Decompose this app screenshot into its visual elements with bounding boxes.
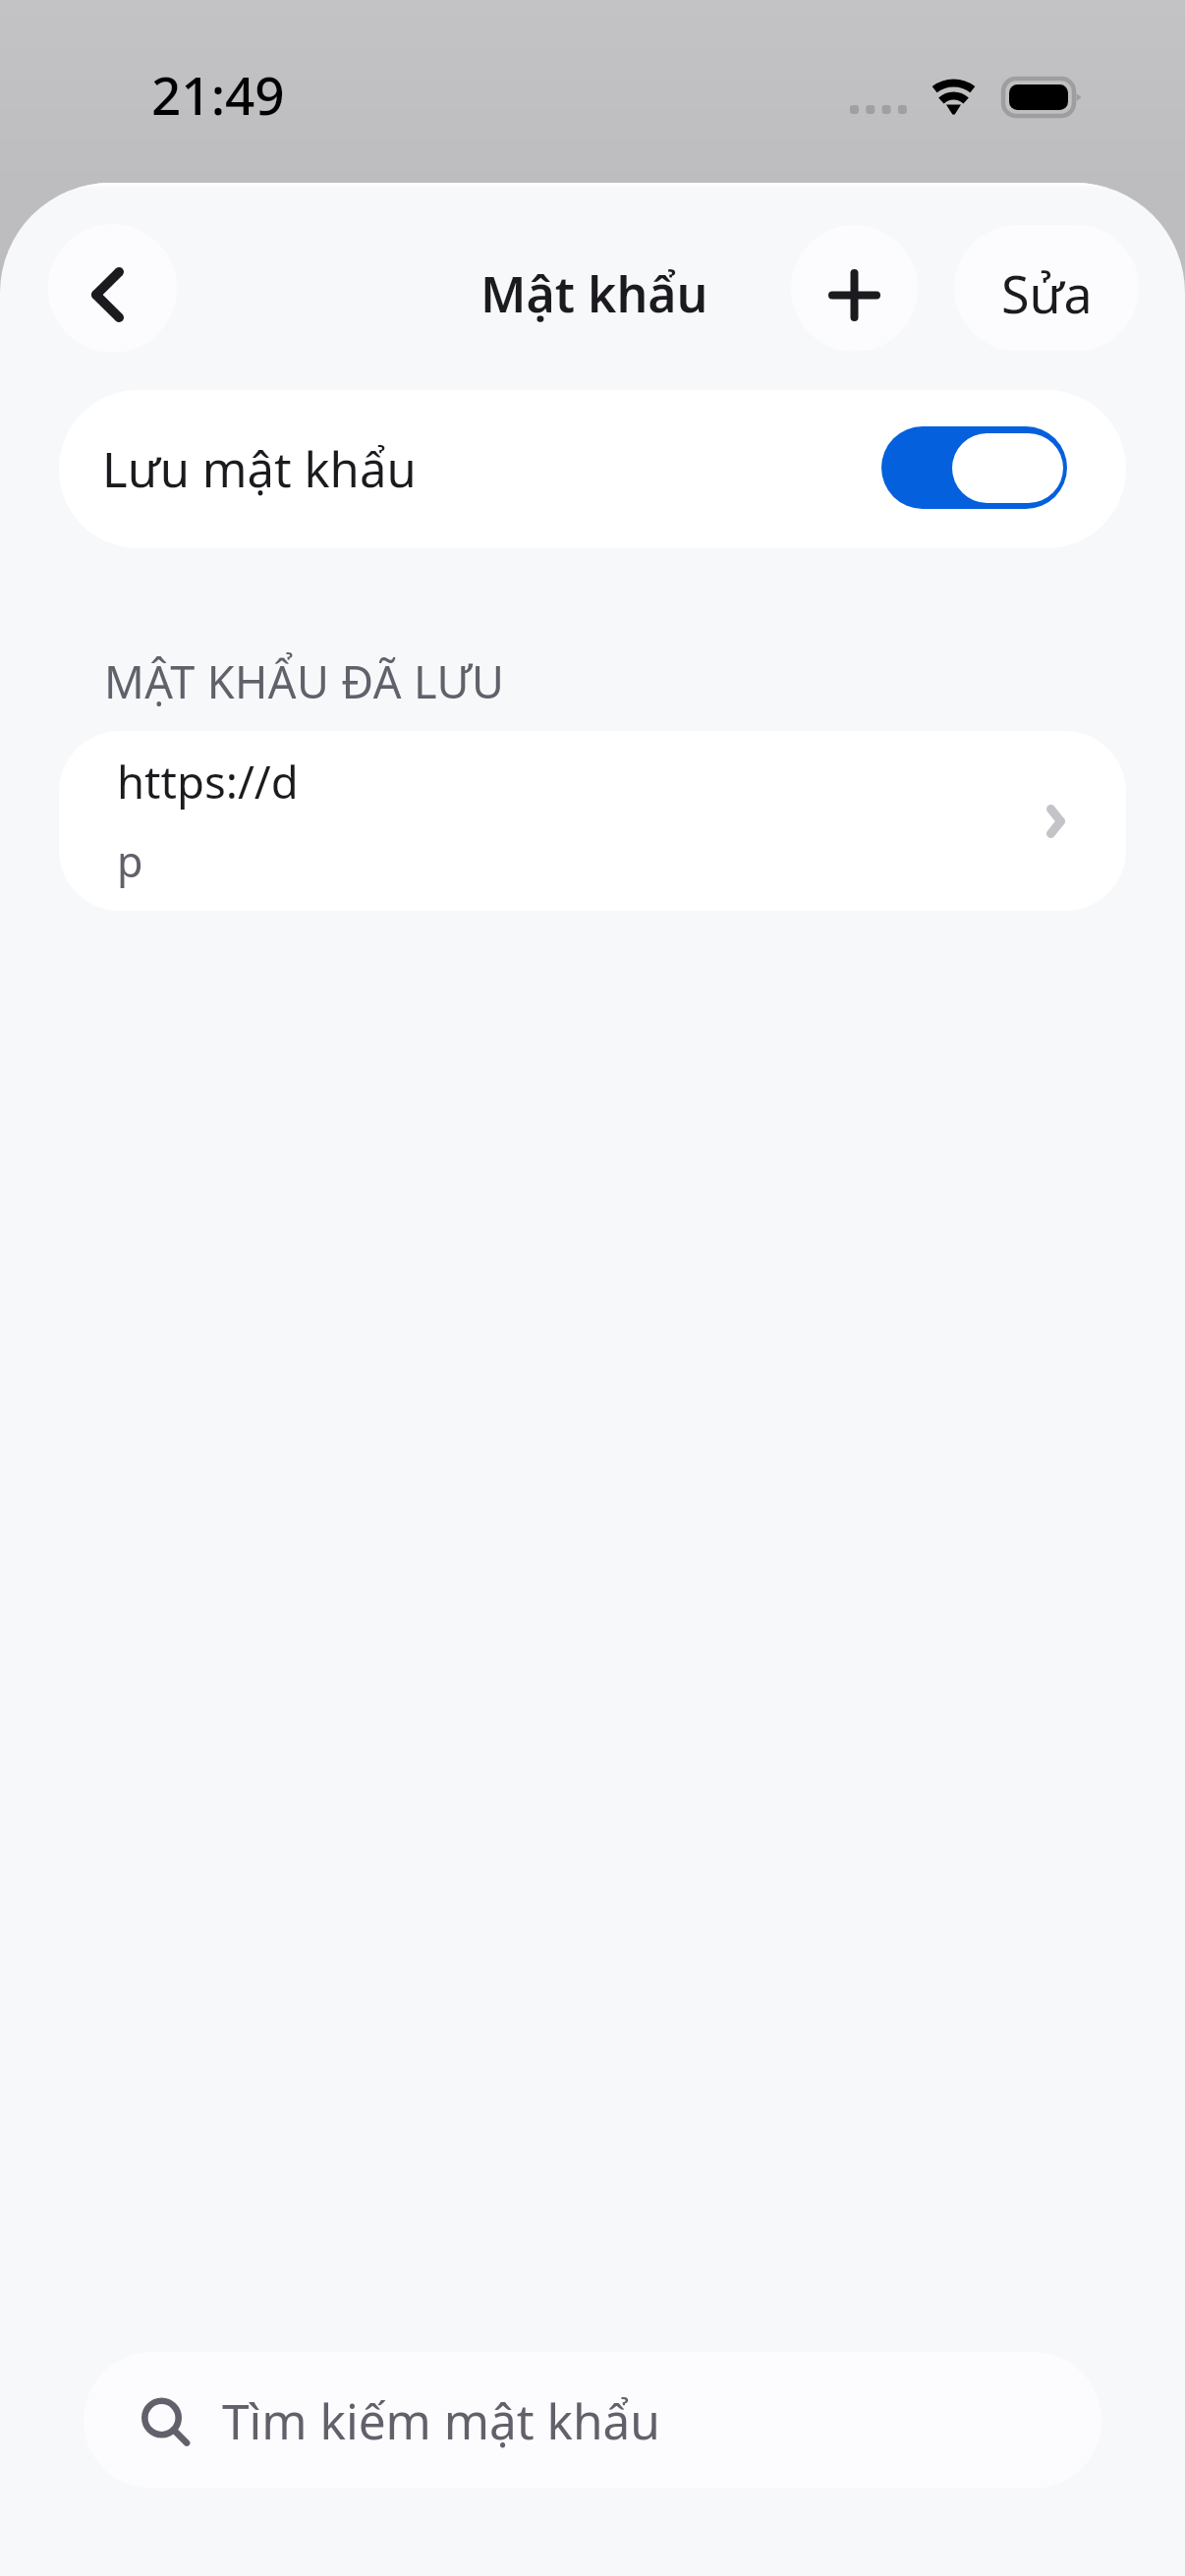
staticText: p [117, 832, 143, 890]
staticText: https://d [117, 751, 299, 812]
button[interactable]: Add password [791, 225, 918, 352]
button[interactable]: Search passwords [84, 2352, 1101, 2489]
button[interactable]: https://d [59, 731, 1126, 911]
staticText: 21:49 [151, 59, 285, 130]
staticText: Mật khẩu [480, 260, 708, 327]
staticText: Lưu mật khẩu [102, 436, 417, 502]
staticText: Tìm kiếm mật khẩu [222, 2387, 660, 2453]
button[interactable]: Save passwords [881, 426, 1067, 509]
button[interactable]: Sửa [954, 225, 1139, 351]
button[interactable]: Lưu mật khẩu [59, 390, 1126, 548]
staticText: MẬT KHẨU ĐÃ LƯU [104, 651, 505, 711]
staticText: Sửa [1001, 258, 1093, 328]
button[interactable]: Back [48, 224, 177, 353]
